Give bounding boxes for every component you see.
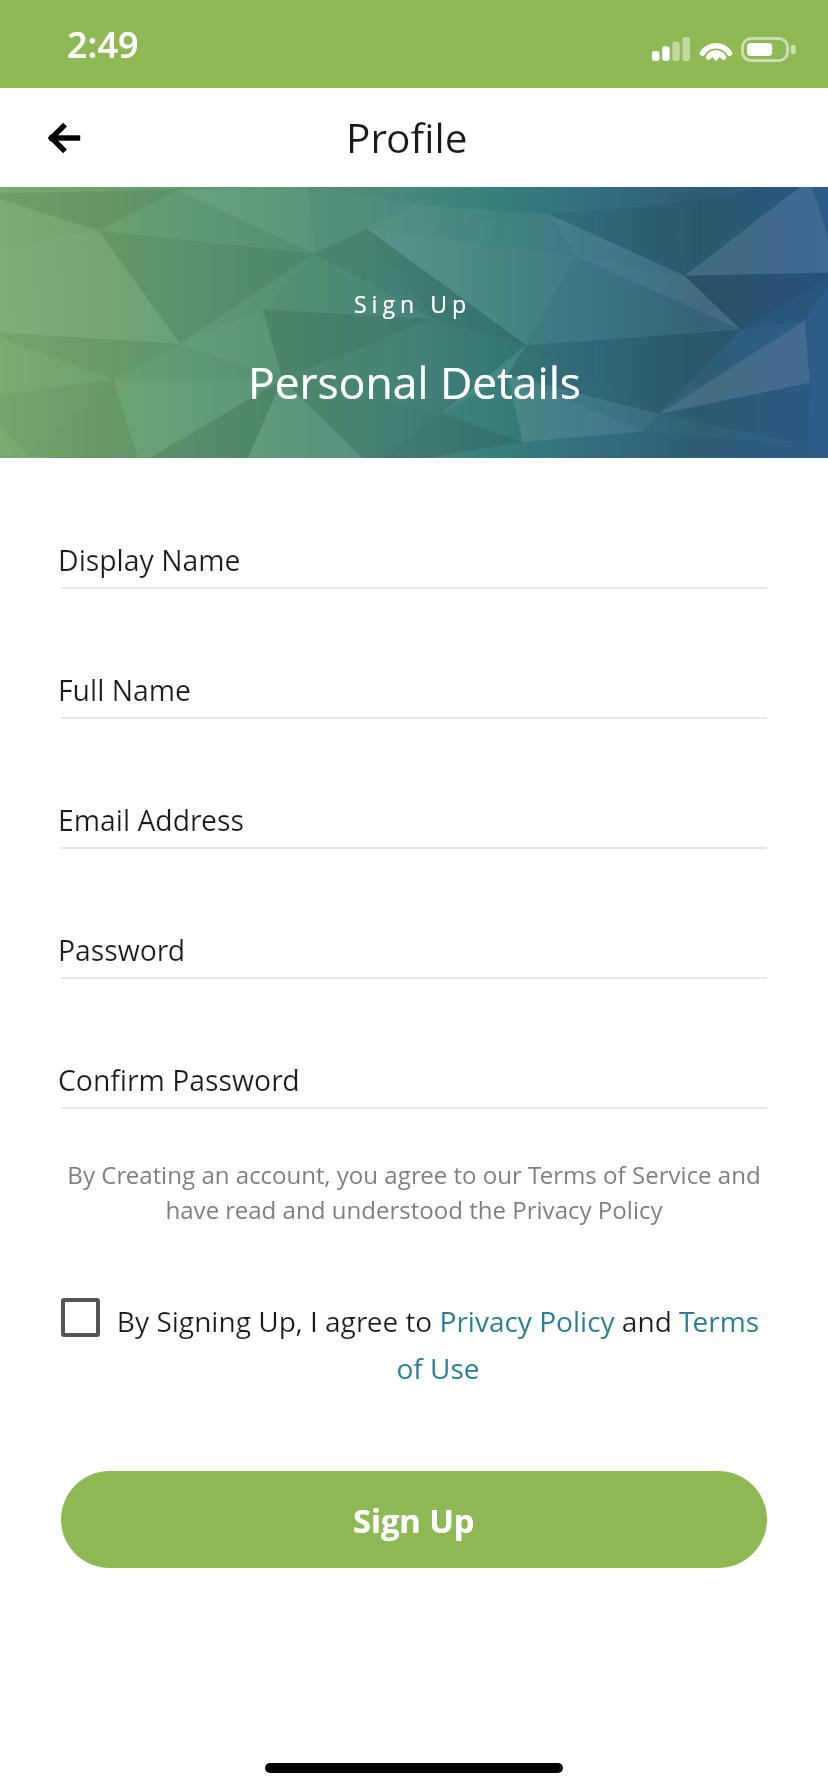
- staticText: Full Name: [58, 671, 191, 710]
- button[interactable]: Back: [22, 96, 106, 180]
- staticText: Confirm Password: [58, 1061, 300, 1100]
- staticText: Personal Details: [248, 352, 581, 412]
- staticText: Email Address: [58, 801, 244, 840]
- staticText: Display Name: [58, 541, 241, 580]
- staticText: By Signing Up, I agree to Privacy Policy…: [114, 1302, 762, 1387]
- staticText: 2:49: [67, 20, 139, 69]
- staticText: Sign Up: [353, 1498, 475, 1542]
- staticText: By Creating an account, you agree to our…: [20, 1158, 808, 1226]
- staticText: Profile: [346, 110, 468, 165]
- staticText: Sign Up: [354, 288, 471, 319]
- button[interactable]: Sign Up: [61, 1471, 767, 1568]
- button[interactable]: By Signing Up, I agree to Privacy Policy…: [61, 1298, 828, 1383]
- staticText: Password: [58, 931, 186, 970]
